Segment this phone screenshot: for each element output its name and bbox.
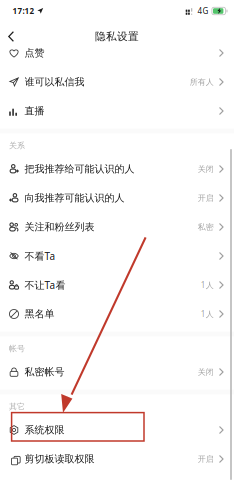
staticText: 把我推荐给可能认识的人 [25,163,135,175]
staticText: 所有人 [190,77,214,87]
staticText: 4G [197,6,208,16]
button[interactable]: 关注和粉丝列表 [0,212,234,241]
staticText: 关闭 [198,367,214,377]
button[interactable]: 私密帐号 [0,357,234,386]
staticText: 直播 [25,105,45,117]
button[interactable]: 返回 [0,26,25,47]
staticText: 其它 [9,401,25,412]
staticText: 私密 [198,222,214,232]
button[interactable]: 点赞 [0,38,234,67]
staticText: 关闭 [198,164,214,174]
button[interactable]: 剪切板读取权限 [0,444,234,473]
staticText: 开启 [198,193,214,203]
button[interactable]: 谁可以私信我 [0,67,234,96]
button[interactable]: 直播 [0,96,234,125]
button[interactable]: 把我推荐给可能认识的人 [0,154,234,183]
button[interactable]: 黑名单 [0,299,234,328]
staticText: 系统权限 [25,424,65,436]
staticText: 17:12 [12,6,34,16]
staticText: 隐私设置 [95,30,139,43]
staticText: 私密帐号 [25,366,65,378]
button[interactable]: 向我推荐可能认识的人 [0,183,234,212]
button[interactable]: 不让Ta看 [0,270,234,299]
staticText: 不看Ta [25,249,56,263]
staticText: 关系 [9,140,25,151]
staticText: 剪切板读取权限 [25,453,95,465]
staticText: 关注和粉丝列表 [25,221,95,233]
staticText: 1人 [201,280,214,290]
staticText: 开启 [198,454,214,464]
staticText: 帐号 [9,343,25,354]
staticText: 1人 [201,309,214,319]
button[interactable]: 不看Ta [0,241,234,270]
staticText: 谁可以私信我 [25,76,85,88]
button[interactable]: 系统权限 [0,415,234,444]
staticText: 不让Ta看 [25,278,66,292]
staticText: 向我推荐可能认识的人 [25,192,125,204]
staticText: 黑名单 [25,308,55,320]
staticText: 点赞 [25,47,45,59]
